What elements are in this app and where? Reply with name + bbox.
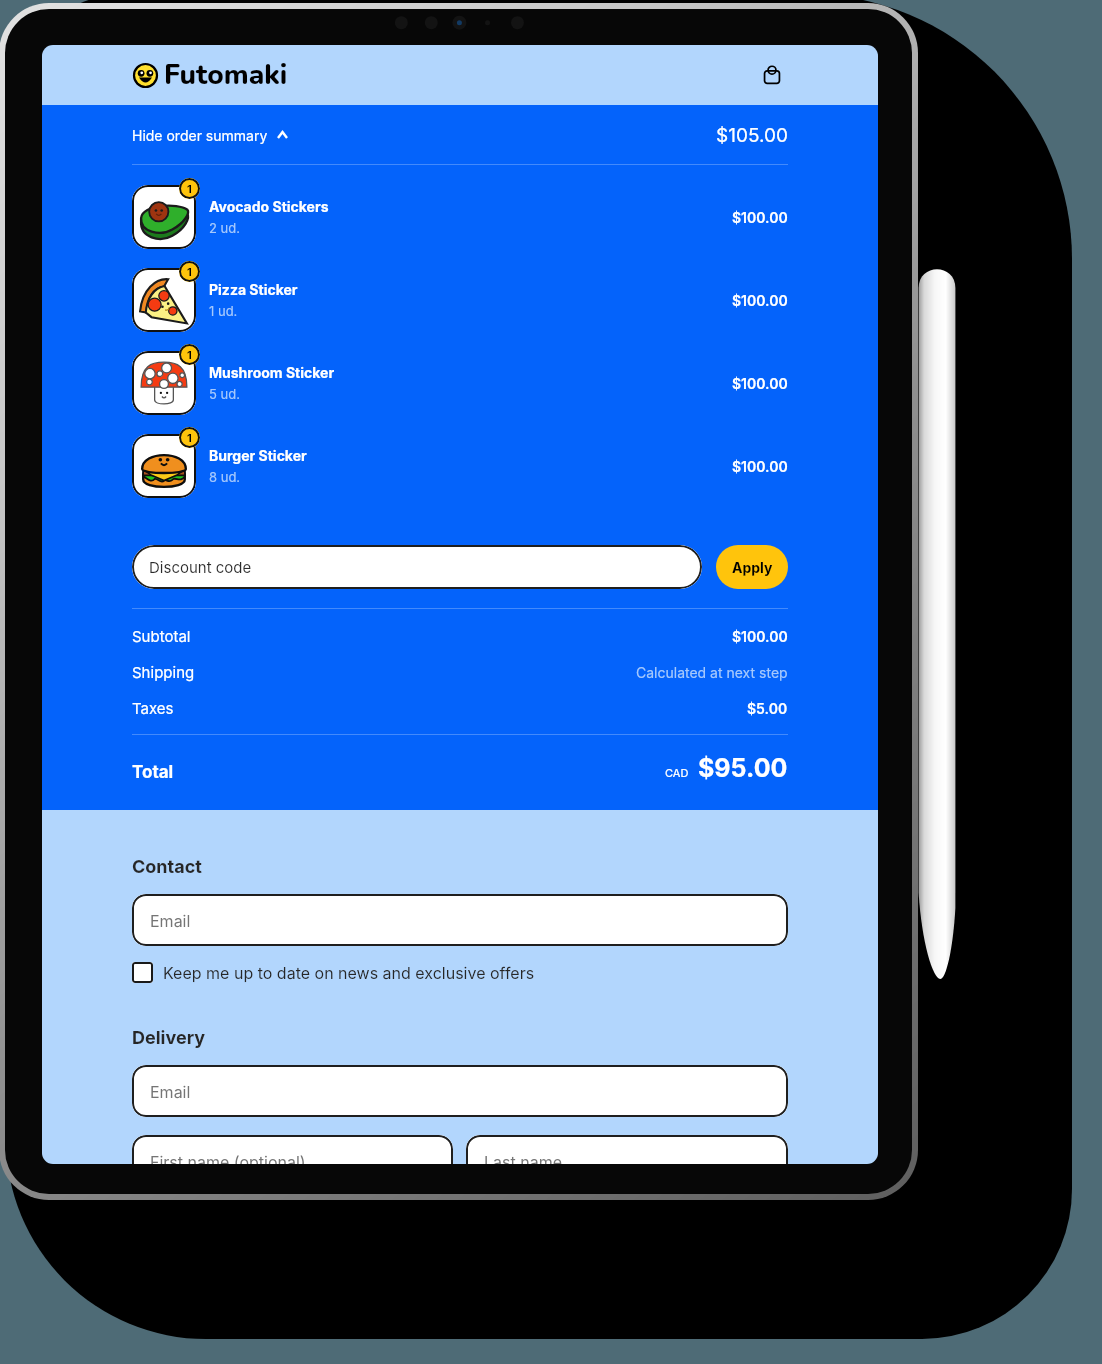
button[interactable]: 1 <box>132 351 788 415</box>
staticText: 5 ud. <box>209 386 240 402</box>
staticText: Keep me up to date on news and exclusive… <box>163 963 535 982</box>
staticText: $100.00 <box>732 628 788 645</box>
button[interactable]: Apply <box>716 545 788 589</box>
button[interactable]: 1 <box>132 185 788 249</box>
staticText: 1 <box>187 431 192 444</box>
button[interactable]: Discount code <box>132 545 702 589</box>
staticText: CAD <box>665 766 689 779</box>
button[interactable]: Hide order summary <box>132 120 788 150</box>
staticText: Email <box>150 1082 191 1101</box>
button[interactable]: First name (optional) <box>132 1135 453 1164</box>
button[interactable]: Email <box>132 1065 788 1117</box>
button[interactable]: Shopping bag <box>755 58 789 92</box>
staticText: $95.00 <box>698 753 788 783</box>
staticText: Email <box>150 911 191 930</box>
staticText: Calculated at next step <box>636 664 788 681</box>
staticText: 1 <box>187 182 192 195</box>
button[interactable]: Email <box>132 894 788 946</box>
staticText: Burger Sticker <box>209 447 307 464</box>
staticText: $100.00 <box>732 292 788 309</box>
staticText: Shipping <box>132 663 195 681</box>
staticText: $105.00 <box>716 124 788 147</box>
staticText: $100.00 <box>732 458 788 475</box>
staticText: 8 ud. <box>209 469 241 485</box>
staticText: First name (optional) <box>150 1152 306 1164</box>
staticText: 1 ud. <box>209 303 238 319</box>
staticText: Total <box>132 762 174 783</box>
button[interactable]: Keep me up to date on news and exclusive… <box>132 962 535 983</box>
button[interactable]: 1 <box>132 268 788 332</box>
staticText: $5.00 <box>747 700 788 717</box>
button[interactable]: Last name <box>466 1135 788 1164</box>
staticText: Contact <box>132 856 202 878</box>
staticText: Futomaki <box>164 56 288 94</box>
staticText: Last name <box>484 1152 562 1164</box>
staticText: Apply <box>732 559 773 576</box>
staticText: $100.00 <box>732 209 788 226</box>
staticText: Hide order summary <box>132 127 268 144</box>
staticText: Avocado Stickers <box>209 198 329 215</box>
button[interactable]: 1 <box>132 434 788 498</box>
staticText: Mushroom Sticker <box>209 364 335 381</box>
staticText: Pizza Sticker <box>209 281 298 298</box>
staticText: 2 ud. <box>209 220 240 236</box>
staticText: Delivery <box>132 1027 206 1049</box>
staticText: 1 <box>187 265 192 278</box>
staticText: Discount code <box>149 558 252 576</box>
staticText: Subtotal <box>132 627 191 645</box>
staticText: Taxes <box>132 699 174 717</box>
staticText: $100.00 <box>732 375 788 392</box>
staticText: 1 <box>187 348 192 361</box>
